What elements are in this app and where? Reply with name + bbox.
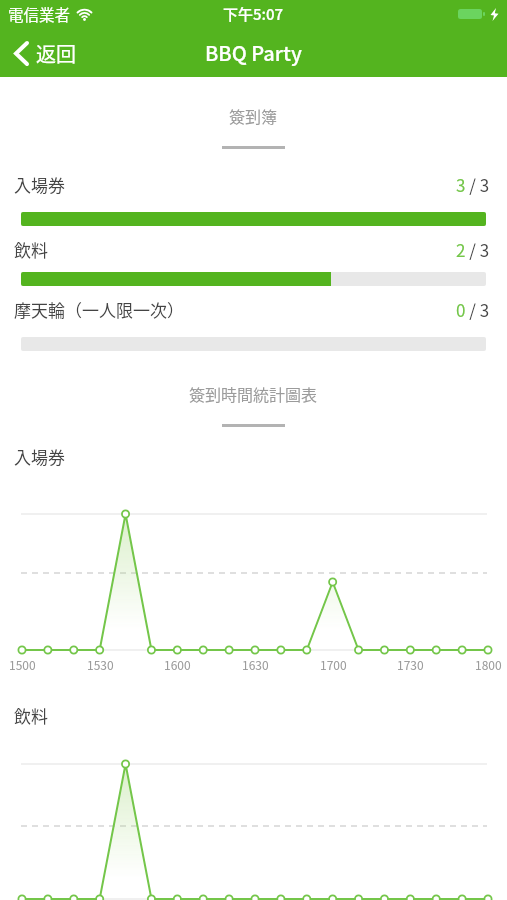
button[interactable]: 入場券 — [14, 172, 490, 197]
staticText: 電信業者 — [8, 3, 71, 25]
staticText: BBQ Party — [205, 38, 302, 67]
staticText: 3 / 3 — [456, 172, 490, 197]
staticText: 飲料 — [14, 237, 456, 262]
staticText: 入場券 — [14, 172, 456, 197]
staticText: 簽到簿 — [229, 104, 278, 127]
staticText: 摩天輪（一人限一次） — [14, 297, 456, 322]
staticText: 簽到時間統計圖表 — [189, 382, 318, 405]
staticText: 入場券 — [14, 444, 65, 469]
staticText: 1630 — [242, 656, 269, 673]
button[interactable]: 飲料 — [14, 237, 490, 262]
button[interactable]: 摩天輪（一人限一次） — [14, 297, 490, 322]
staticText: 1800 — [475, 656, 502, 673]
staticText: 下午5:07 — [223, 3, 284, 25]
staticText: 1600 — [164, 656, 191, 673]
button[interactable]: 返回 — [13, 39, 76, 68]
staticText: 1500 — [9, 656, 36, 673]
staticText: 1530 — [87, 656, 114, 673]
staticText: 飲料 — [14, 703, 48, 728]
staticText: 返回 — [36, 39, 76, 68]
staticText: 1700 — [320, 656, 347, 673]
staticText: 0 / 3 — [456, 297, 490, 322]
staticText: 1730 — [397, 656, 424, 673]
staticText: 2 / 3 — [456, 237, 490, 262]
